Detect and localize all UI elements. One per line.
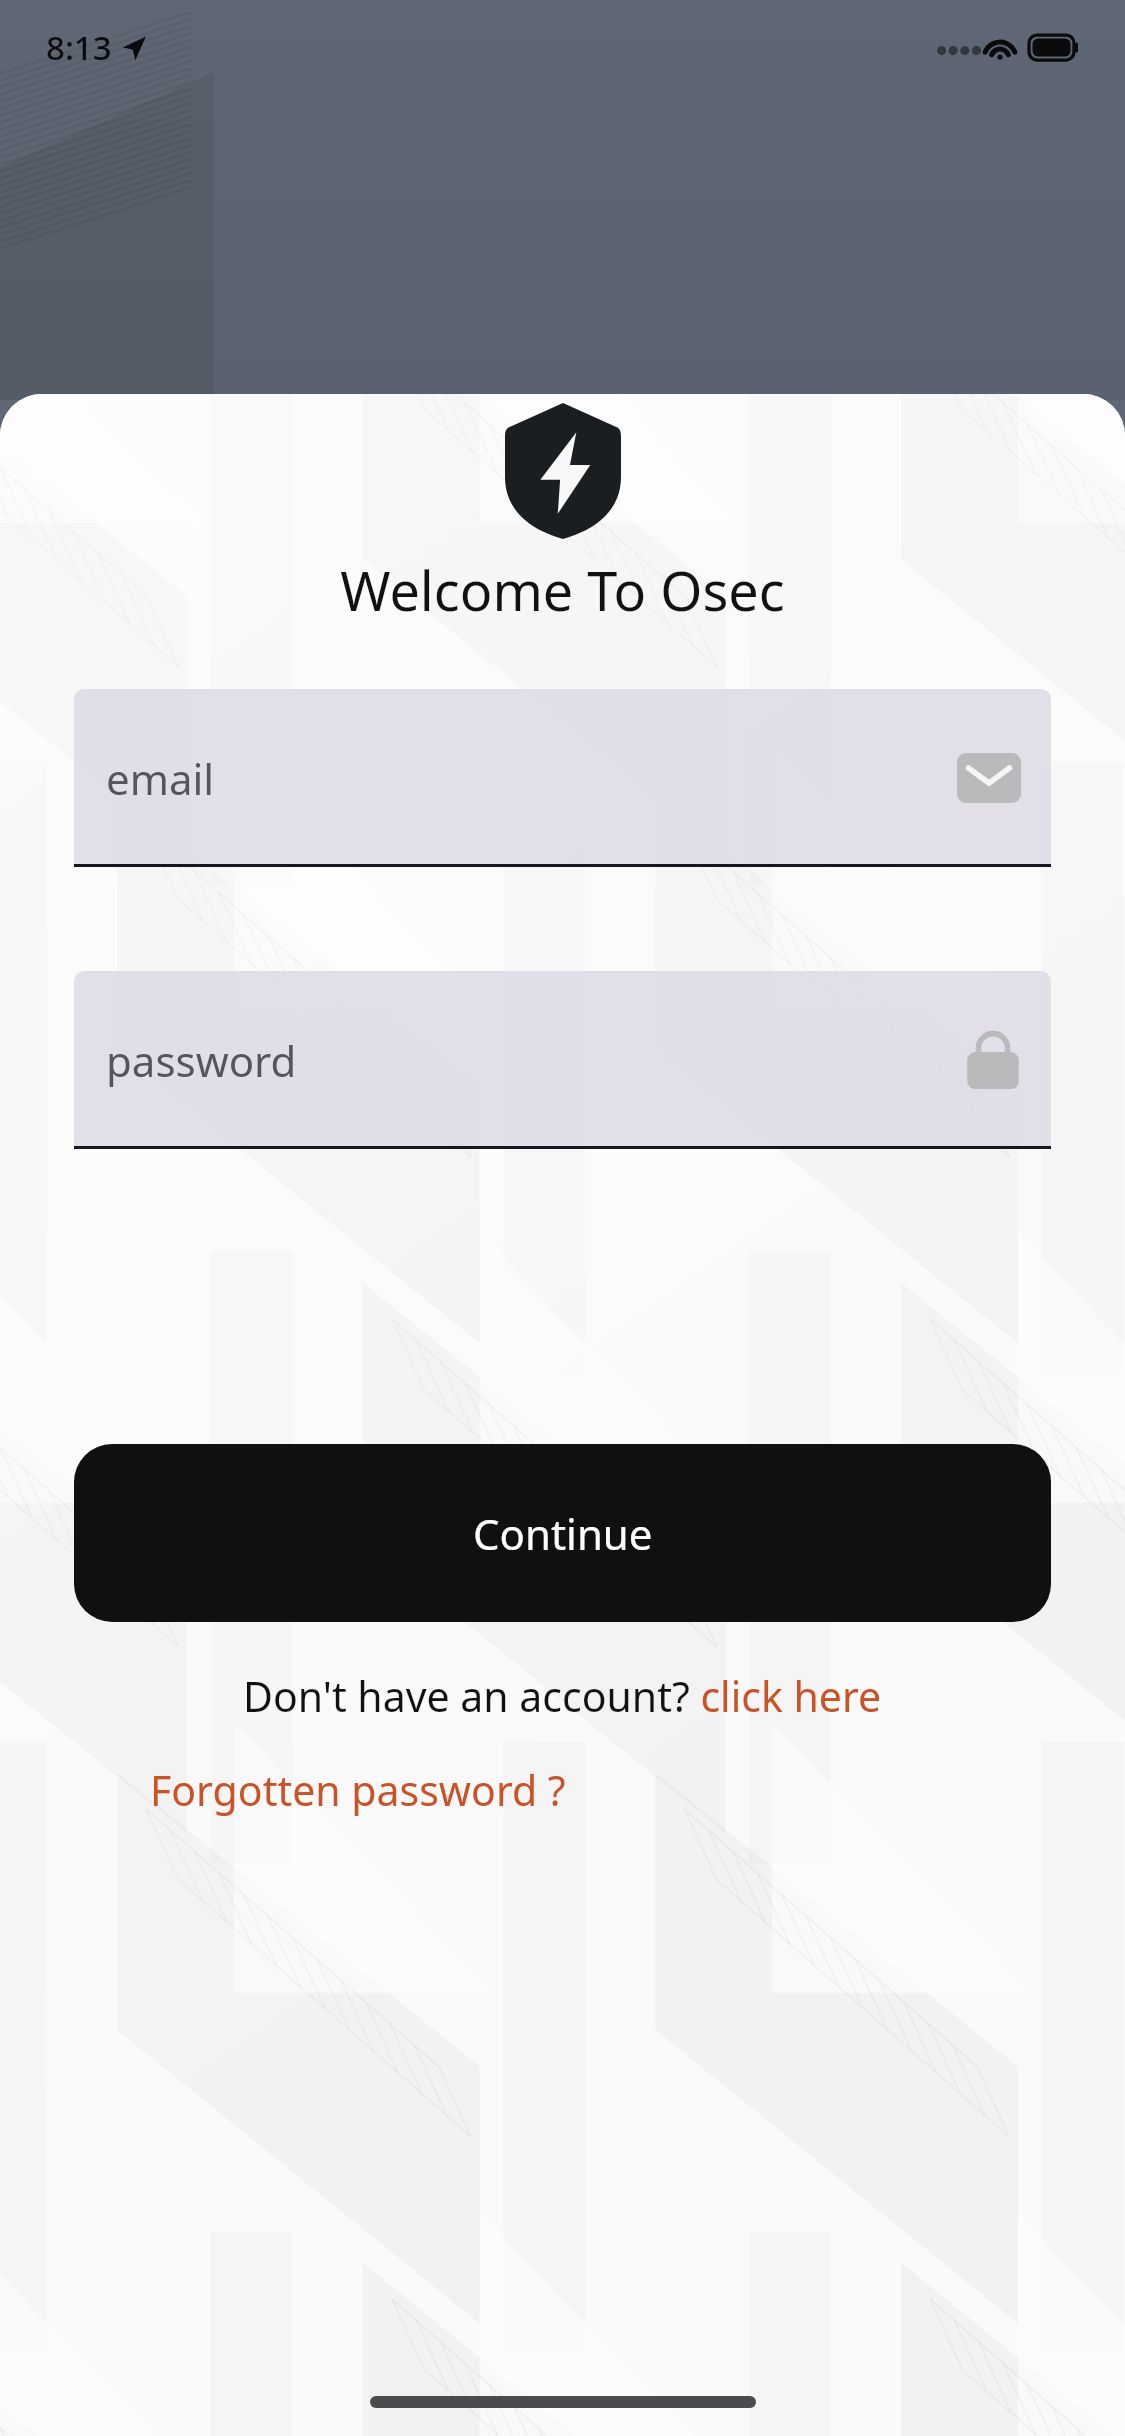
staticText: password bbox=[106, 1032, 297, 1089]
staticText: 8:13 bbox=[46, 25, 112, 70]
button[interactable]: Forgotten password ? bbox=[150, 1754, 566, 1826]
staticText: Forgotten password ? bbox=[150, 1762, 566, 1818]
button[interactable]: Email address bbox=[74, 689, 1051, 867]
button[interactable]: Don't have an account? click here bbox=[233, 1660, 892, 1732]
staticText: email bbox=[106, 750, 215, 807]
staticText: Don't have an account? click here bbox=[243, 1668, 882, 1724]
button[interactable]: Continue bbox=[74, 1444, 1051, 1622]
staticText: Welcome To Osec bbox=[340, 553, 785, 627]
button[interactable]: Password bbox=[74, 971, 1051, 1149]
staticText: Continue bbox=[473, 1505, 653, 1562]
